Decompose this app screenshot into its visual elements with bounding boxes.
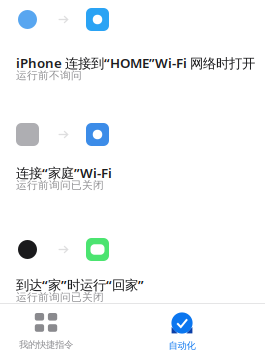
- button[interactable]: 连接“家庭”Wi-Fi: [0, 115, 265, 230]
- staticText: 自动化: [168, 340, 195, 351]
- button[interactable]: 自动化: [136, 304, 228, 360]
- staticText: 连接“家庭”Wi-Fi: [16, 164, 112, 182]
- staticText: iPhone 连接到“HOME”Wi-Fi 网络时打开: [16, 54, 255, 72]
- staticText: 运行前询问已关闭: [16, 179, 104, 192]
- staticText: 运行前询问已关闭: [16, 291, 104, 304]
- button[interactable]: iPhone 连接到“HOME”Wi-Fi 网络时打开: [0, 0, 265, 115]
- button[interactable]: 我的快捷指令: [0, 304, 92, 360]
- staticText: 我的快捷指令: [19, 339, 73, 350]
- staticText: 到达“家”时运行“回家”: [16, 276, 144, 294]
- button[interactable]: 到达“家”时运行“回家”: [0, 230, 265, 345]
- staticText: 运行前不询问: [16, 69, 82, 82]
